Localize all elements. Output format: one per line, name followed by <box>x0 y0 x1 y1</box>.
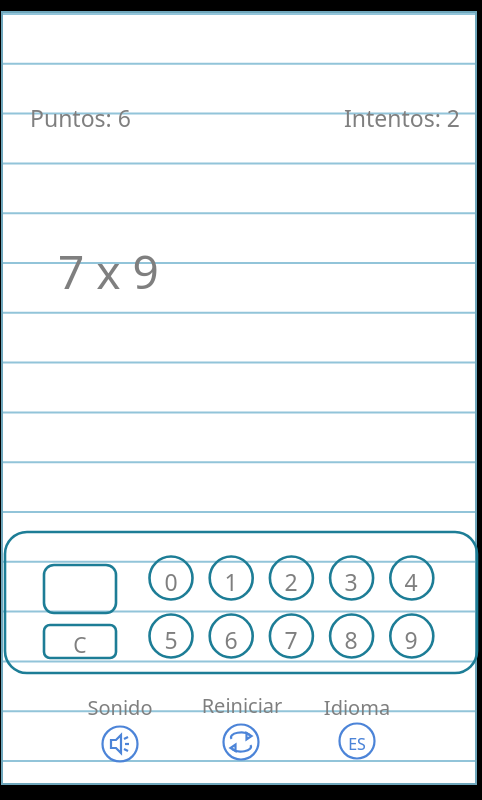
staticText: 7 <box>269 624 313 654</box>
staticText: 0 <box>149 566 193 596</box>
button[interactable]: Key 8 <box>329 614 373 658</box>
staticText: Reiniciar <box>188 692 296 720</box>
staticText: 8 <box>329 624 373 654</box>
button[interactable]: Key 0 <box>149 556 193 600</box>
staticText: Idioma <box>309 694 405 722</box>
button[interactable]: Key 7 <box>269 614 313 658</box>
button[interactable]: Key 4 <box>389 556 433 600</box>
staticText: 5 <box>149 624 193 654</box>
staticText: 3 <box>329 566 373 596</box>
button[interactable]: Key 1 <box>209 556 253 600</box>
staticText: C <box>44 631 116 659</box>
button[interactable]: Clear <box>44 625 116 658</box>
button[interactable]: Key 9 <box>389 614 433 658</box>
button[interactable]: Reiniciar <box>204 686 280 764</box>
button[interactable]: Key 6 <box>209 614 253 658</box>
staticText: Puntos: 6 <box>30 102 240 132</box>
button[interactable]: Idioma <box>321 688 393 766</box>
staticText: Sonido <box>72 694 168 722</box>
button[interactable]: Answer display <box>44 565 116 613</box>
staticText: 2 <box>269 566 313 596</box>
staticText: 1 <box>209 566 253 596</box>
staticText: Intentos: 2 <box>250 102 460 132</box>
staticText: ES <box>337 733 377 757</box>
button[interactable]: Key 5 <box>149 614 193 658</box>
button[interactable]: Sonido <box>85 688 157 766</box>
staticText: 6 <box>209 624 253 654</box>
button[interactable]: Key 2 <box>269 556 313 600</box>
button[interactable]: Key 3 <box>329 556 373 600</box>
staticText: 4 <box>389 566 433 596</box>
staticText: 9 <box>389 624 433 654</box>
staticText: 7 x 9 <box>58 240 298 302</box>
